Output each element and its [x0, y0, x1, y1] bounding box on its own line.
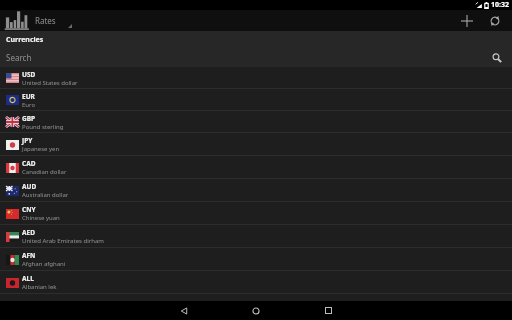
staticText: AED	[22, 228, 35, 237]
button[interactable]: CAD	[0, 156, 512, 179]
staticText: CNY	[22, 205, 36, 214]
staticText: CAD	[22, 159, 36, 168]
button[interactable]: CNY	[0, 202, 512, 225]
button[interactable]: Search	[0, 48, 512, 67]
staticText: Chinese yuan	[22, 214, 60, 222]
staticText: Rates	[35, 15, 56, 26]
staticText: ALL	[22, 274, 34, 283]
staticText: GBP	[22, 114, 36, 123]
staticText: EUR	[22, 92, 35, 101]
staticText: Afghan afghani	[22, 260, 66, 268]
staticText: Currencies	[6, 35, 44, 45]
staticText: Albanian lek	[22, 283, 57, 291]
button[interactable]: Recent apps	[304, 301, 352, 320]
staticText: Canadian dollar	[22, 168, 67, 176]
button[interactable]: GBP	[0, 111, 512, 133]
staticText: United States dollar	[22, 79, 78, 87]
staticText: United Arab Emirates dirham	[22, 237, 104, 245]
staticText: JPY	[22, 136, 33, 145]
button[interactable]: JPY	[0, 133, 512, 156]
staticText: Euro	[22, 101, 36, 109]
button[interactable]: USD	[0, 67, 512, 89]
button[interactable]: Refresh	[484, 10, 506, 31]
button[interactable]: Search	[489, 50, 505, 66]
button[interactable]: AFN	[0, 248, 512, 271]
staticText: Search	[6, 52, 32, 63]
staticText: USD	[22, 70, 36, 79]
staticText: AFN	[22, 251, 36, 260]
button[interactable]: ALL	[0, 271, 512, 294]
staticText: Japanese yen	[22, 145, 60, 153]
staticText: Australian dollar	[22, 191, 69, 199]
staticText: AUD	[22, 182, 37, 191]
button[interactable]: EUR	[0, 89, 512, 111]
button[interactable]: Add currency	[456, 10, 478, 31]
button[interactable]: AED	[0, 225, 512, 248]
staticText: 10:32	[491, 0, 509, 10]
button[interactable]: Back	[160, 301, 208, 320]
staticText: Pound sterling	[22, 123, 64, 131]
button[interactable]: Home	[232, 301, 280, 320]
button[interactable]: AUD	[0, 179, 512, 202]
